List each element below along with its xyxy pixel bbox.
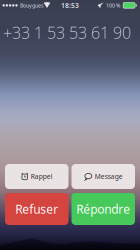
button[interactable]: Répondre <box>71 193 135 225</box>
staticText: Refuser <box>15 201 58 217</box>
button[interactable]: Refuser <box>5 193 68 225</box>
staticText: 100 % <box>106 2 120 9</box>
staticText: 18:53 <box>61 1 79 10</box>
staticText: Bouygues <box>20 2 44 9</box>
staticText: +33 1 53 53 61 90 <box>3 22 131 43</box>
button[interactable]: Message <box>71 164 135 189</box>
staticText: Rappel <box>31 172 53 181</box>
staticText: Message <box>95 172 123 181</box>
button[interactable]: Rappel <box>5 164 68 189</box>
staticText: Répondre <box>76 201 130 217</box>
